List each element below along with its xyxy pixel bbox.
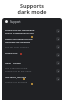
staticText: Supports dark mode (17, 2, 47, 16)
other: Avatar (56, 29, 60, 33)
staticText: Thank you (5, 51, 18, 54)
other: Avatar (56, 61, 60, 65)
other: Avatar (56, 77, 60, 81)
other: Avatar (56, 69, 60, 73)
staticText: contact us anytime (5, 80, 28, 83)
other: Avatar (56, 53, 60, 57)
other: Avatar (56, 45, 60, 49)
staticText: Hello Where (5, 61, 21, 64)
staticText: you for your contact (5, 45, 29, 48)
staticText: It is a terrible thing contact us at the… (5, 66, 32, 72)
other: Avatar (56, 37, 60, 41)
staticText: Thank you for contacting This is a respo… (5, 28, 35, 34)
staticText: You did it, we love (5, 75, 27, 78)
staticText: Support (10, 20, 21, 24)
button[interactable]: Support (2, 18, 62, 25)
staticText: thank you again for the message we recei… (5, 37, 33, 43)
